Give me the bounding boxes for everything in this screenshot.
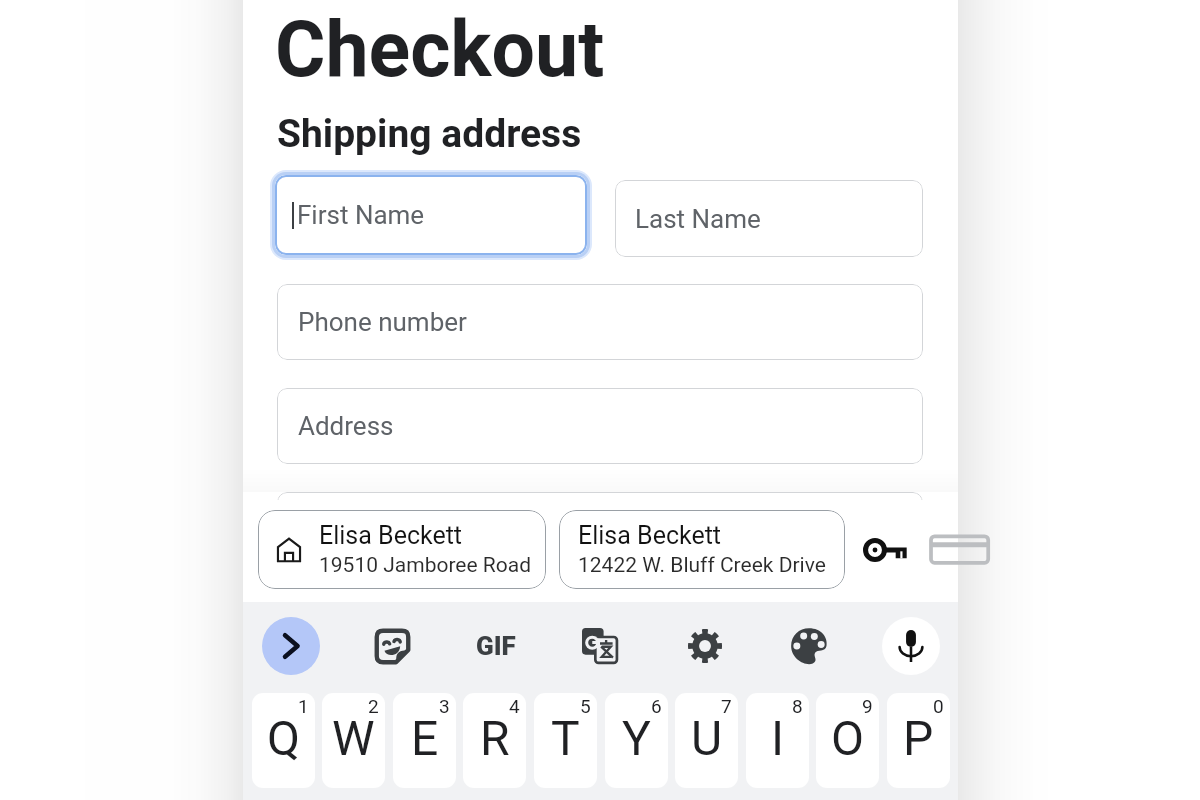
staticText: 3 xyxy=(439,695,450,717)
button[interactable]: 1 xyxy=(252,693,315,788)
staticText: O xyxy=(831,710,865,766)
button[interactable]: Payment methods xyxy=(924,525,982,583)
button[interactable]: Elisa Beckett xyxy=(559,510,845,589)
staticText: Q xyxy=(267,710,301,766)
button[interactable]: Translate xyxy=(571,617,629,675)
staticText: First Name xyxy=(297,200,425,230)
button[interactable]: 9 xyxy=(816,693,879,788)
staticText: Y xyxy=(622,710,651,766)
staticText: 6 xyxy=(651,695,662,717)
staticText: 19510 Jamboree Road xyxy=(319,553,531,578)
button[interactable]: Address xyxy=(277,388,923,464)
staticText: 7 xyxy=(721,695,732,717)
staticText: Checkout xyxy=(275,5,605,95)
staticText: I xyxy=(771,710,785,766)
staticText: P xyxy=(903,710,934,766)
staticText: E xyxy=(411,710,439,766)
button[interactable]: Phone number xyxy=(277,284,923,360)
button[interactable]: 7 xyxy=(675,693,738,788)
staticText: Last Name xyxy=(635,204,761,234)
staticText: GIF xyxy=(476,631,516,661)
staticText: Phone number xyxy=(298,307,467,337)
staticText: U xyxy=(691,710,723,766)
staticText: 5 xyxy=(580,695,591,717)
staticText: W xyxy=(332,710,375,766)
staticText: 8 xyxy=(792,695,803,717)
button[interactable]: 5 xyxy=(534,693,597,788)
button[interactable]: Stickers xyxy=(363,617,421,675)
button[interactable]: Elisa Beckett xyxy=(258,510,546,589)
button[interactable]: 6 xyxy=(605,693,668,788)
button[interactable]: Voice input xyxy=(882,617,940,675)
staticText: 2 xyxy=(368,695,379,717)
button[interactable]: Themes xyxy=(780,617,838,675)
staticText: 0 xyxy=(933,695,944,717)
button[interactable]: Expand toolbar xyxy=(262,617,320,675)
staticText: 1 xyxy=(298,695,309,717)
staticText: 4 xyxy=(509,695,520,717)
button[interactable]: 2 xyxy=(322,693,385,788)
button[interactable]: 8 xyxy=(746,693,809,788)
staticText: T xyxy=(551,710,580,766)
staticText: R xyxy=(480,710,510,766)
button[interactable]: Settings xyxy=(676,617,734,675)
staticText: Elisa Beckett xyxy=(319,521,463,550)
button[interactable]: 3 xyxy=(393,693,456,788)
button[interactable]: Passwords xyxy=(857,521,915,579)
staticText: Address xyxy=(298,411,394,441)
button[interactable]: First Name xyxy=(275,175,587,255)
staticText: Shipping address xyxy=(277,111,582,157)
button[interactable]: Last Name xyxy=(615,180,923,257)
button[interactable]: GIF keyboard xyxy=(467,617,525,675)
button[interactable]: 4 xyxy=(463,693,526,788)
button[interactable] xyxy=(277,492,923,568)
staticText: 12422 W. Bluff Creek Drive xyxy=(578,553,826,578)
staticText: Elisa Beckett xyxy=(578,521,722,550)
button[interactable]: 0 xyxy=(887,693,950,788)
staticText: 9 xyxy=(862,695,873,717)
